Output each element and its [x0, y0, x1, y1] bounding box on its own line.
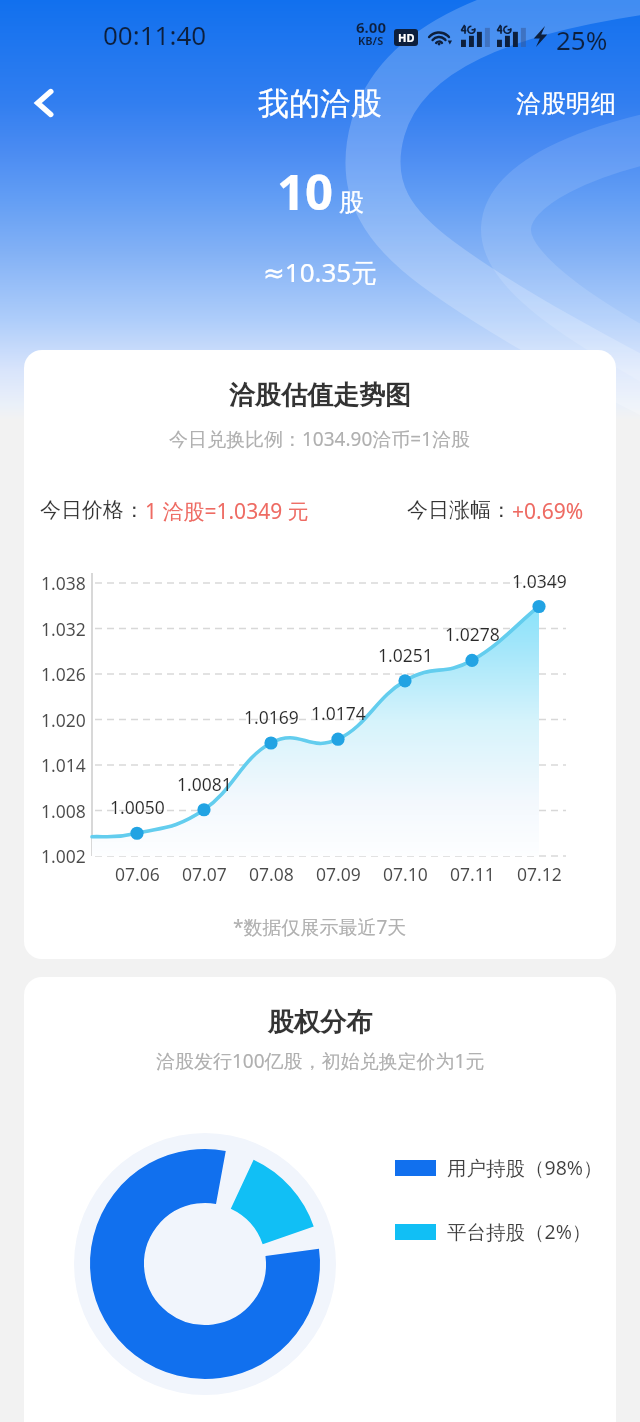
staticText: 1.0251: [378, 643, 433, 667]
staticText: 1.0169: [244, 705, 299, 729]
staticText: 1.0174: [311, 701, 366, 725]
staticText: 00:11:40: [103, 17, 207, 52]
staticText: 1.014: [41, 753, 86, 777]
staticText: 我的洽股: [258, 84, 382, 123]
staticText: 6.00: [356, 17, 386, 37]
staticText: 洽股明细: [516, 88, 616, 119]
staticText: 07.10: [383, 862, 428, 886]
staticText: 1.026: [41, 662, 86, 686]
staticText: *数据仅展示最近7天: [233, 914, 407, 940]
staticText: 1.0081: [177, 772, 232, 796]
staticText: 用户持股（98%）: [447, 1154, 603, 1181]
staticText: 1.038: [41, 571, 86, 595]
staticText: +0.69%: [512, 497, 584, 526]
staticText: ≈10.35元: [263, 254, 378, 290]
staticText: 洽股估值走势图: [229, 379, 411, 412]
button[interactable]: 洽股明细: [492, 78, 640, 129]
staticText: 1.0278: [445, 622, 500, 646]
staticText: 1.0050: [110, 795, 165, 819]
staticText: 07.06: [115, 862, 160, 886]
staticText: 1.032: [41, 617, 86, 641]
staticText: 1.0349: [512, 569, 567, 593]
staticText: 平台持股（2%）: [447, 1218, 592, 1245]
staticText: 10: [277, 158, 334, 225]
staticText: 今日涨幅：: [407, 497, 512, 523]
staticText: 1.002: [41, 844, 86, 868]
staticText: 07.12: [517, 862, 562, 886]
staticText: HD: [398, 30, 415, 45]
staticText: 1.020: [41, 708, 86, 732]
button[interactable]: Back: [18, 77, 70, 129]
staticText: 07.11: [450, 862, 495, 886]
staticText: 07.09: [316, 862, 361, 886]
staticText: 今日兑换比例：1034.90洽币=1洽股: [169, 426, 471, 452]
staticText: 1.008: [41, 799, 86, 823]
staticText: 洽股发行100亿股，初始兑换定价为1元: [156, 1048, 485, 1074]
staticText: 1 洽股=1.0349 元: [145, 497, 309, 526]
staticText: 07.07: [182, 862, 227, 886]
staticText: 今日价格：: [40, 497, 145, 523]
staticText: 25%: [556, 22, 608, 57]
staticText: KB/S: [358, 33, 384, 48]
staticText: 股权分布: [268, 1006, 372, 1039]
staticText: 07.08: [249, 862, 294, 886]
staticText: 股: [339, 187, 364, 218]
